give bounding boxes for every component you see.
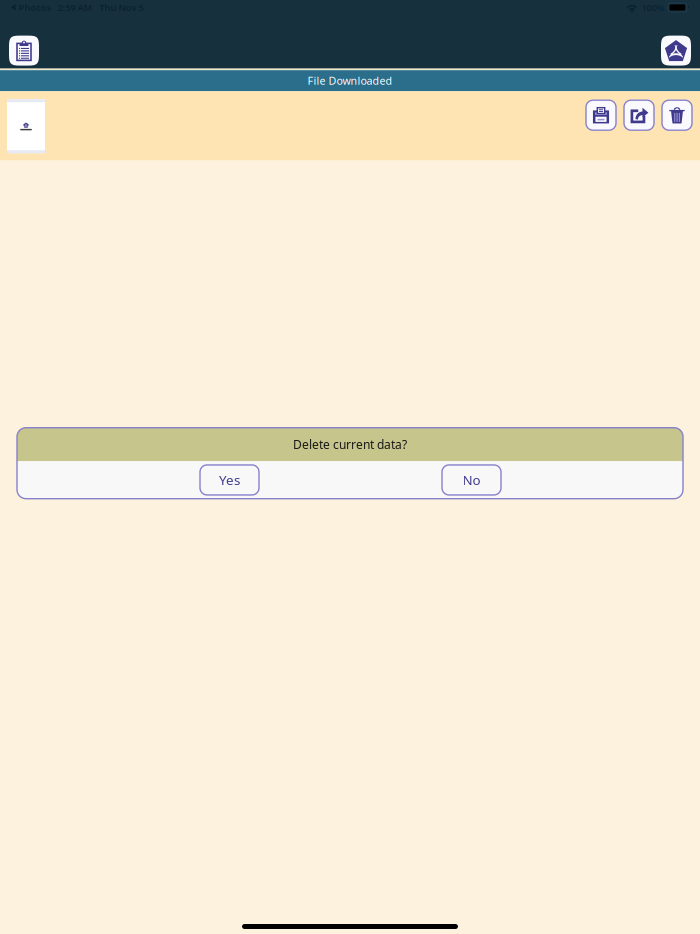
staticText: File Downloaded <box>307 74 392 88</box>
staticText: Photos <box>18 1 51 14</box>
button[interactable]: No <box>442 465 501 495</box>
staticText: No <box>462 471 480 489</box>
button[interactable]: Delete <box>662 100 692 130</box>
button[interactable]: Yes <box>200 465 259 495</box>
staticText: Thu Nov 5 <box>99 1 143 14</box>
button[interactable]: Share <box>624 100 654 130</box>
button[interactable]: App home <box>661 36 691 66</box>
staticText: 100% <box>641 1 664 14</box>
staticText: Delete current data? <box>293 436 407 452</box>
button[interactable]: Save <box>586 100 616 130</box>
staticText: Yes <box>219 471 240 489</box>
staticText: 2:59 AM <box>57 1 92 14</box>
button[interactable]: Records <box>9 36 39 66</box>
